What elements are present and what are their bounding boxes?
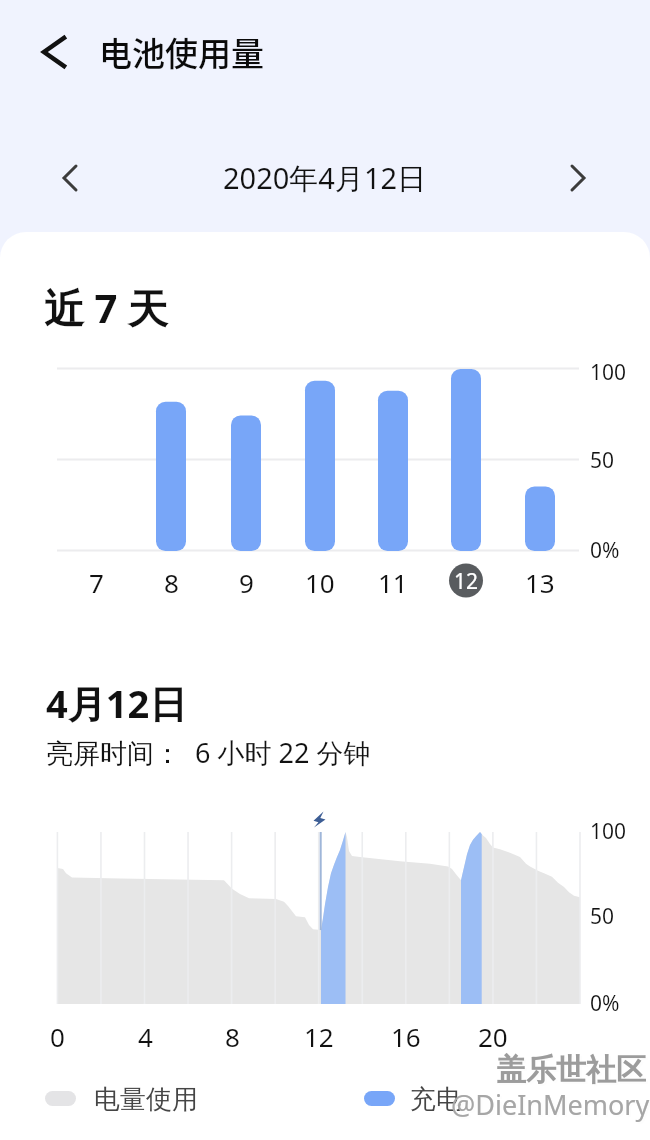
staticText: 0%: [590, 989, 620, 1018]
staticText: 8: [164, 565, 179, 600]
staticText: 近 7 天: [44, 280, 168, 335]
staticText: 16: [391, 1019, 421, 1054]
staticText: 9: [239, 565, 254, 600]
staticText: 10: [305, 565, 335, 600]
button[interactable]: [45, 153, 95, 203]
staticText: 充电: [410, 1083, 462, 1116]
staticText: 50: [590, 446, 615, 475]
staticText: 0%: [590, 536, 620, 565]
staticText: 100: [590, 817, 627, 846]
button[interactable]: [553, 153, 603, 203]
staticText: 20: [478, 1019, 508, 1054]
staticText: 盖乐世社区: [496, 1051, 646, 1089]
staticText: 12: [454, 567, 479, 596]
staticText: 11: [378, 565, 408, 600]
staticText: 7: [89, 565, 104, 600]
staticText: 0: [50, 1019, 65, 1054]
staticText: 8: [225, 1019, 240, 1054]
staticText: 2020年4月12日: [223, 158, 427, 198]
staticText: 4: [138, 1019, 153, 1054]
staticText: 4月12日: [46, 677, 188, 729]
button[interactable]: [30, 26, 80, 76]
staticText: 12: [304, 1019, 334, 1054]
staticText: @DieInMemory: [451, 1086, 650, 1123]
staticText: 13: [525, 565, 555, 600]
staticText: 电池使用量: [99, 28, 264, 76]
staticText: 100: [590, 358, 627, 387]
staticText: 电量使用: [94, 1083, 198, 1116]
staticText: @DieInMemory: [453, 1088, 650, 1125]
staticText: 亮屏时间： 6 小时 22 分钟: [46, 734, 371, 771]
staticText: 盖乐世社区: [498, 1053, 648, 1091]
staticText: 50: [590, 902, 615, 931]
